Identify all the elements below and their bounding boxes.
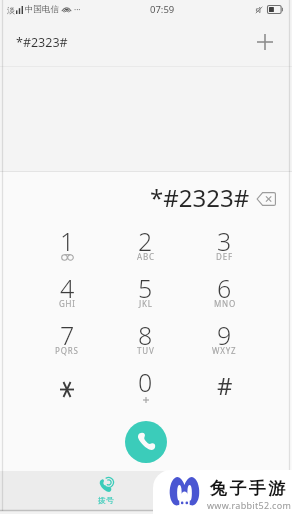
staticText: #: [217, 369, 233, 402]
button[interactable]: 5: [106, 267, 185, 314]
staticText: 淡: [7, 5, 15, 15]
staticText: ABC: [137, 251, 155, 262]
staticText: 兔子手游: [210, 478, 288, 499]
staticText: DEF: [216, 251, 233, 262]
staticText: 7: [60, 318, 75, 352]
staticText: WXYZ: [212, 345, 237, 356]
staticText: 拨号: [98, 495, 114, 505]
staticText: 6: [217, 271, 232, 305]
staticText: 3: [217, 224, 232, 258]
staticText: ···: [74, 4, 81, 15]
staticText: PQRS: [55, 345, 79, 356]
staticText: JKL: [139, 298, 153, 309]
button[interactable]: [28, 361, 106, 408]
staticText: 8: [138, 318, 153, 352]
button[interactable]: 0: [106, 361, 185, 408]
button[interactable]: Call: [125, 421, 167, 463]
button[interactable]: 8: [106, 314, 185, 361]
staticText: *#2323#: [150, 181, 250, 214]
staticText: 0: [138, 365, 153, 399]
staticText: www.rabbit52.com: [207, 499, 292, 511]
staticText: 2: [138, 224, 153, 258]
staticText: 4: [60, 271, 75, 305]
button[interactable]: 2: [106, 220, 185, 267]
button[interactable]: 拨号: [71, 471, 141, 514]
button[interactable]: 6: [185, 267, 264, 314]
staticText: TUV: [137, 345, 155, 356]
button[interactable]: 1: [28, 220, 106, 267]
button[interactable]: #: [185, 361, 264, 408]
staticText: 5: [138, 271, 153, 305]
staticText: 1: [60, 224, 75, 258]
button[interactable]: Backspace: [252, 185, 280, 213]
button[interactable]: Add contact: [249, 26, 281, 58]
button[interactable]: 7: [28, 314, 106, 361]
staticText: *#2323#: [16, 34, 68, 51]
staticText: 07:59: [150, 3, 175, 16]
button[interactable]: 4: [28, 267, 106, 314]
staticText: GHI: [59, 298, 76, 309]
button[interactable]: 3: [185, 220, 264, 267]
staticText: 中国电信: [25, 4, 59, 15]
staticText: MNO: [214, 298, 236, 309]
button[interactable]: 9: [185, 314, 264, 361]
staticText: 9: [217, 318, 232, 352]
